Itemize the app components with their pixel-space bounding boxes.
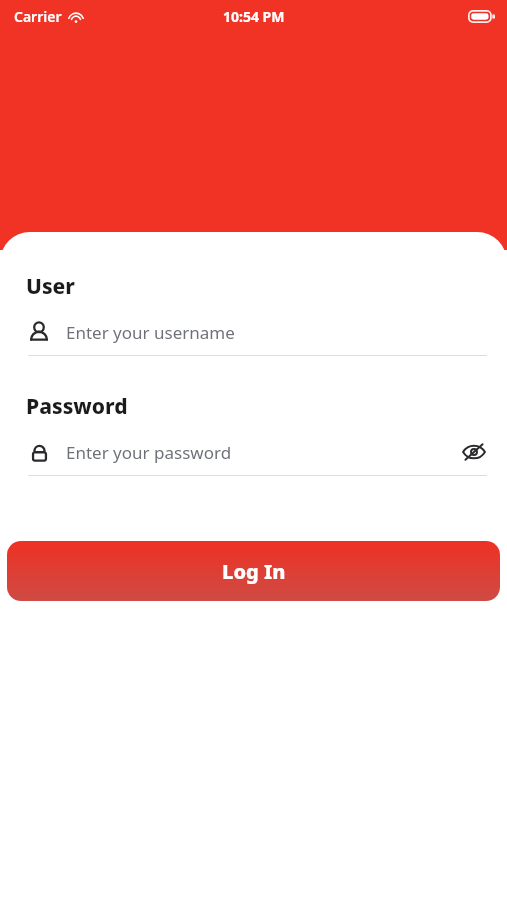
button[interactable]: Password bbox=[0, 435, 507, 469]
staticText: User bbox=[26, 272, 75, 301]
button[interactable]: Log In bbox=[7, 541, 500, 601]
button[interactable]: User bbox=[0, 315, 507, 349]
staticText: Carrier bbox=[14, 7, 62, 26]
staticText: Enter your username bbox=[66, 321, 235, 344]
other: User bbox=[26, 319, 52, 345]
staticText: 10:54 PM bbox=[223, 7, 285, 26]
button[interactable]: Show password bbox=[459, 437, 489, 467]
other: Password bbox=[26, 439, 52, 465]
staticText: Log In bbox=[222, 558, 286, 585]
staticText: Password bbox=[26, 392, 128, 421]
staticText: Enter your password bbox=[66, 441, 232, 464]
